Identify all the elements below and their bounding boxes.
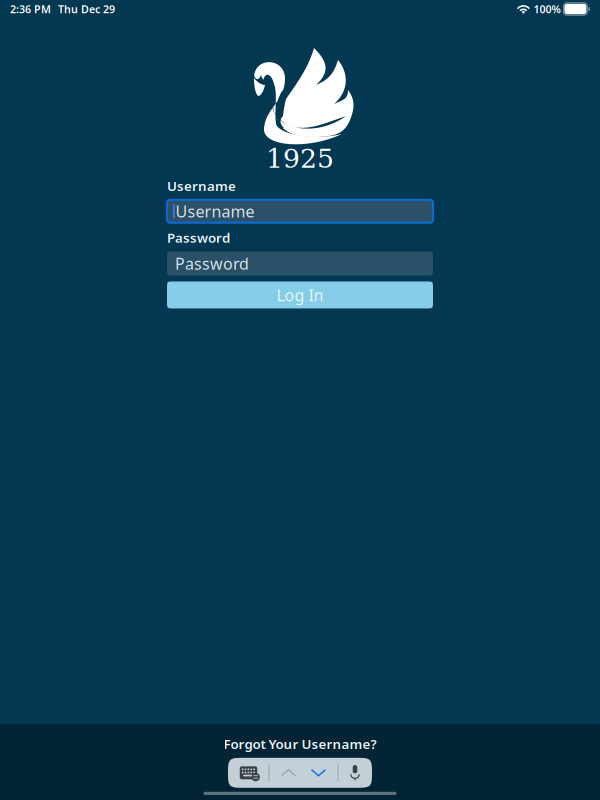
button[interactable]: Log In xyxy=(167,281,433,308)
staticText: Username xyxy=(176,201,255,222)
staticText: Forgot Your Username? xyxy=(223,735,376,753)
button[interactable]: Next field xyxy=(304,758,332,788)
staticText: Password xyxy=(175,253,249,274)
button[interactable]: Dismiss keyboard xyxy=(228,758,268,788)
staticText: 2:36 PM xyxy=(10,2,51,16)
button[interactable]: Previous field xyxy=(274,758,302,788)
button[interactable]: Username xyxy=(167,200,433,223)
staticText: 100% xyxy=(533,2,560,16)
staticText: Log In xyxy=(276,284,323,305)
staticText: 1925 xyxy=(266,143,334,174)
staticText: Password xyxy=(167,229,230,246)
button[interactable]: Password xyxy=(167,251,433,275)
staticText: Thu Dec 29 xyxy=(58,2,115,16)
button[interactable]: Dictate xyxy=(338,758,371,788)
staticText: Username xyxy=(167,177,236,195)
button[interactable]: Forgot Your Username? xyxy=(223,724,376,758)
